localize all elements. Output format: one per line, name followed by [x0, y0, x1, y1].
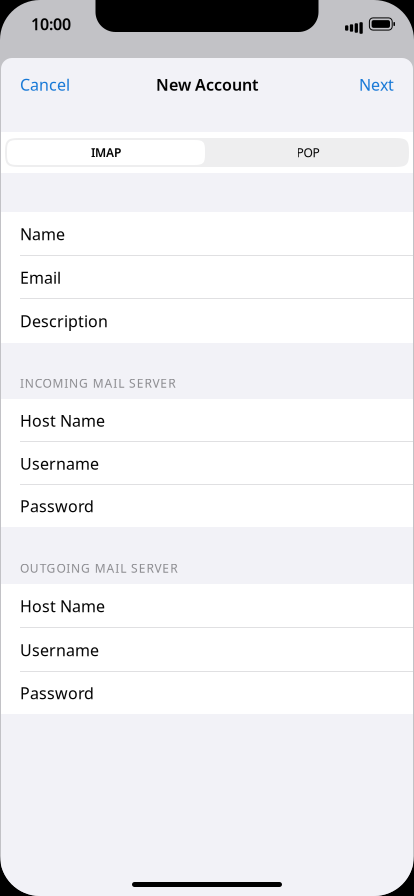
button[interactable]: Password	[1, 672, 413, 714]
button[interactable]: Email	[1, 256, 413, 299]
staticText: Password	[20, 495, 94, 517]
staticText: Cancel	[20, 74, 70, 95]
staticText: Username	[20, 639, 99, 661]
button[interactable]: Host Name	[1, 399, 413, 442]
button[interactable]: Username	[1, 442, 413, 485]
staticText: New Account	[156, 74, 258, 95]
staticText: Password	[20, 682, 94, 704]
staticText: Next	[359, 74, 394, 95]
staticText: OUTGOING MAIL SERVER	[20, 560, 177, 576]
staticText: POP	[296, 144, 319, 160]
staticText: IMAP	[91, 144, 121, 160]
button[interactable]: IMAP	[7, 140, 205, 165]
staticText: Email	[20, 267, 61, 288]
button[interactable]: Password	[1, 485, 413, 527]
button[interactable]: Name	[1, 212, 413, 256]
button[interactable]: Description	[1, 299, 413, 343]
staticText: Host Name	[20, 595, 105, 617]
staticText: Username	[20, 453, 99, 474]
button[interactable]: Host Name	[1, 584, 413, 628]
staticText: 10:00	[31, 13, 71, 35]
button[interactable]: Cancel	[1, 58, 89, 111]
staticText: Name	[20, 223, 65, 245]
staticText: Host Name	[20, 410, 105, 431]
button[interactable]: Username	[1, 628, 413, 672]
staticText: INCOMING MAIL SERVER	[20, 375, 175, 391]
staticText: Description	[20, 310, 108, 332]
button[interactable]: POP	[209, 140, 407, 165]
button[interactable]: Next	[340, 58, 413, 111]
